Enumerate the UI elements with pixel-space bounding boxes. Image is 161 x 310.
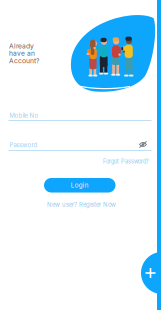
staticText: Account? (9, 57, 39, 65)
staticText: New user? Register Now (47, 201, 116, 208)
button[interactable]: Show password (139, 140, 147, 148)
button[interactable]: New user? Register Now (47, 201, 116, 208)
staticText: have an (9, 49, 35, 57)
staticText: Already (9, 42, 34, 50)
staticText: Mobile No (9, 112, 38, 119)
staticText: Forgot Password? (103, 158, 149, 165)
staticText: Password (9, 141, 37, 149)
button[interactable]: Add (143, 266, 157, 280)
button[interactable]: Forgot Password? (103, 158, 149, 165)
staticText: Login (71, 181, 89, 189)
button[interactable]: Login (44, 178, 115, 192)
